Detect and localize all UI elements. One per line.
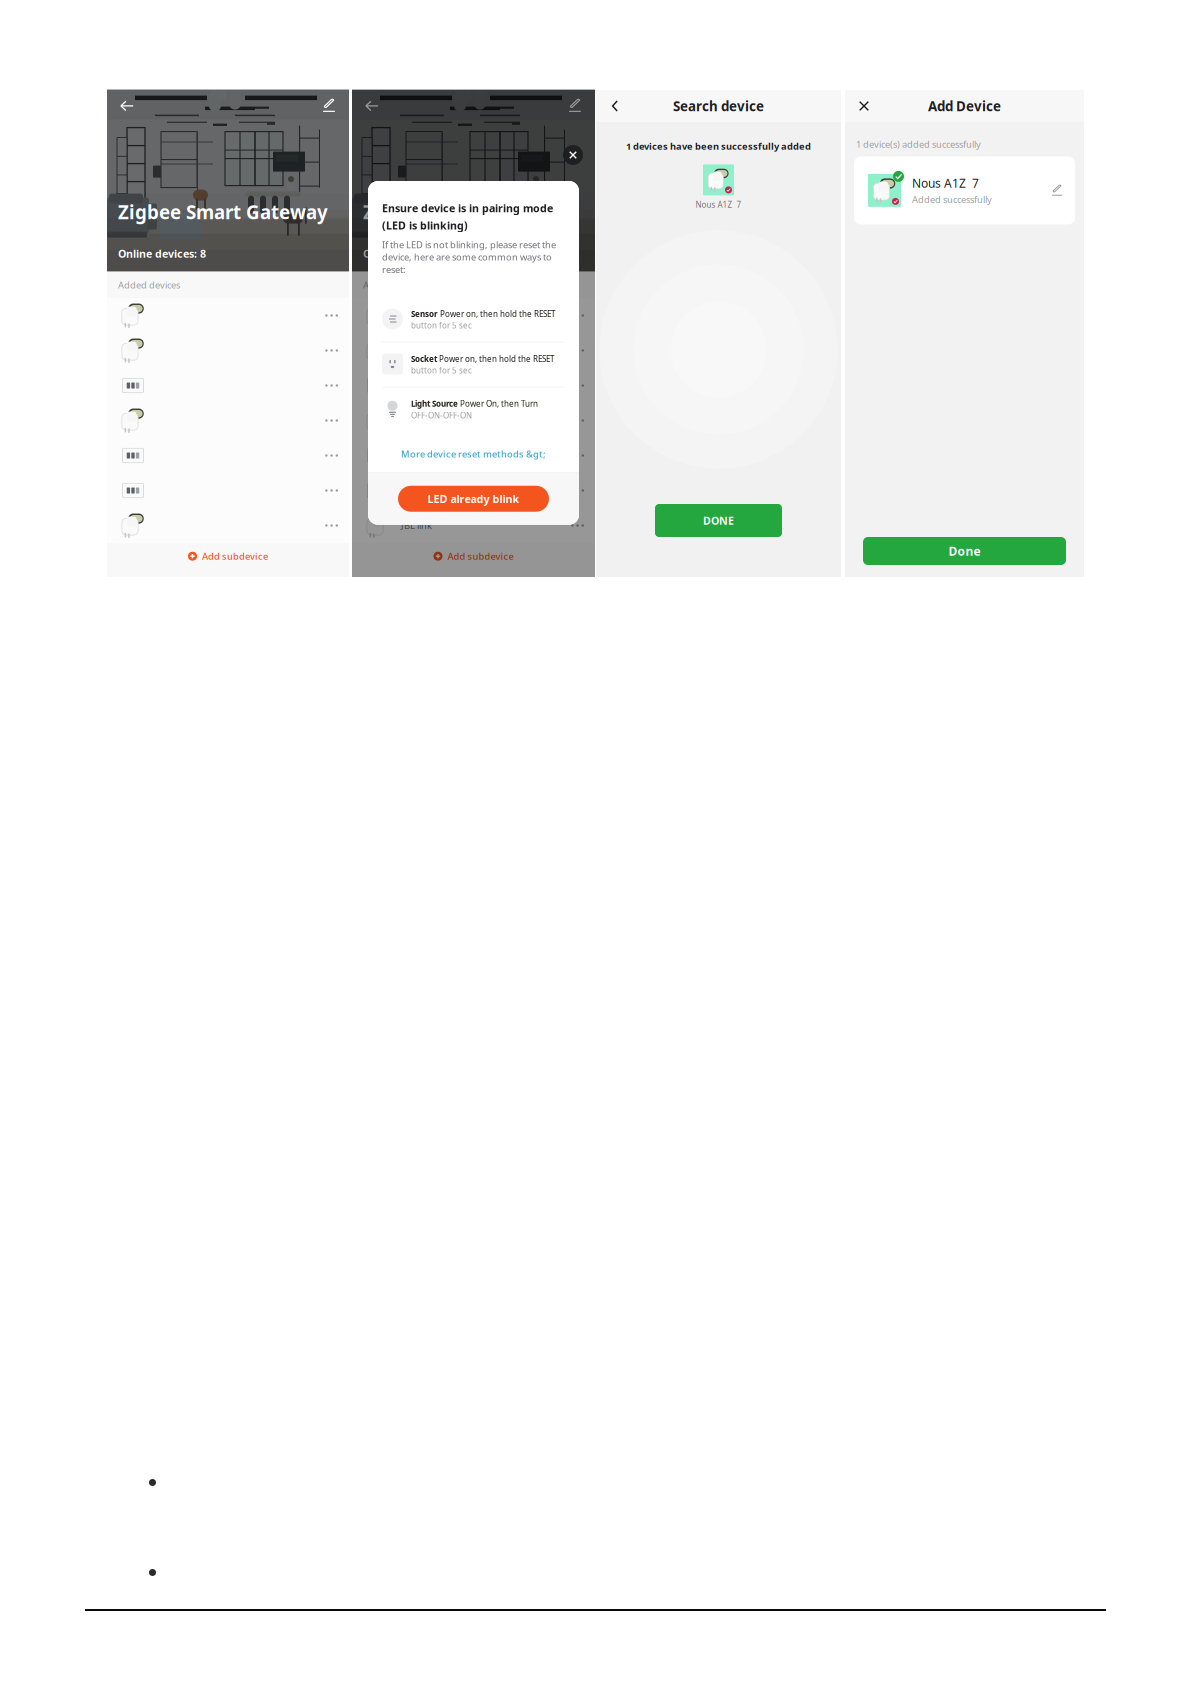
staticText: Add subdevice [202,550,268,562]
staticText: JBL link [401,519,432,532]
button[interactable] [352,438,595,473]
staticText: More device reset methods &gt; [401,448,546,460]
button[interactable]: Close [854,96,874,116]
staticText: Nous A1Z 7 [695,199,741,210]
button[interactable]: More device reset methods &gt; [382,448,565,460]
button[interactable] [352,333,595,368]
staticText: DONE [703,513,734,528]
button[interactable] [107,368,349,403]
button[interactable] [352,298,595,333]
button[interactable]: Close [563,145,583,165]
staticText: Zigbee Smart Gateway [118,200,328,224]
staticText: LED already blink [427,492,519,506]
staticText: Added devices [363,279,425,291]
button[interactable]: Back [117,96,137,116]
staticText: Added successfully [912,193,992,206]
button[interactable] [107,473,349,508]
staticText: 1 device(s) added successfully [856,138,981,150]
button[interactable]: DONE [655,504,782,537]
staticText: Search device [673,97,764,115]
staticText: Add subdevice [447,550,513,562]
staticText: reset: [382,263,406,275]
staticText: Online devices: 8 [118,246,206,261]
staticText: Nous A1Z 7 [912,175,979,191]
button[interactable] [107,403,349,438]
staticText: button for 5 sec [411,365,472,376]
button[interactable] [352,368,595,403]
staticText: Added devices [118,279,180,291]
button[interactable]: Add subdevice [107,543,349,569]
button[interactable]: Edit [319,96,339,116]
button[interactable]: Nous A1Z 7 [854,156,1075,224]
button[interactable] [352,403,595,438]
button[interactable]: Back [362,96,382,116]
staticText: (LED is blinking) [382,218,468,232]
button[interactable]: LED already blink [398,486,549,512]
staticText: If the LED is not blinking, please reset… [382,238,556,251]
staticText: OFF-ON-OFF-ON [411,410,472,421]
staticText: Add Device [928,97,1001,115]
staticText: Ensure device is in pairing mode [382,201,553,215]
button[interactable] [352,473,595,508]
button[interactable] [107,438,349,473]
staticText: button for 5 sec [411,320,472,331]
button[interactable]: JBL link [352,508,595,543]
staticText: device, here are some common ways to [382,251,552,263]
button[interactable]: Edit [565,96,585,116]
staticText: Socket Power on, then hold the RESET [411,353,554,364]
staticText: Online devices: 8 [363,246,451,261]
staticText: Sensor Power on, then hold the RESET [411,308,555,319]
button[interactable] [107,298,349,333]
button[interactable]: Done [863,537,1066,565]
button[interactable]: Add subdevice [352,543,595,569]
staticText: Done [948,543,980,559]
button[interactable]: Back [605,96,625,116]
staticText: Zigbee Smart Gateway [363,200,573,224]
staticText: Light Source Power On, then Turn [411,398,538,409]
button[interactable] [107,333,349,368]
button[interactable] [107,508,349,543]
staticText: 1 devices have been successfully added [626,140,811,152]
